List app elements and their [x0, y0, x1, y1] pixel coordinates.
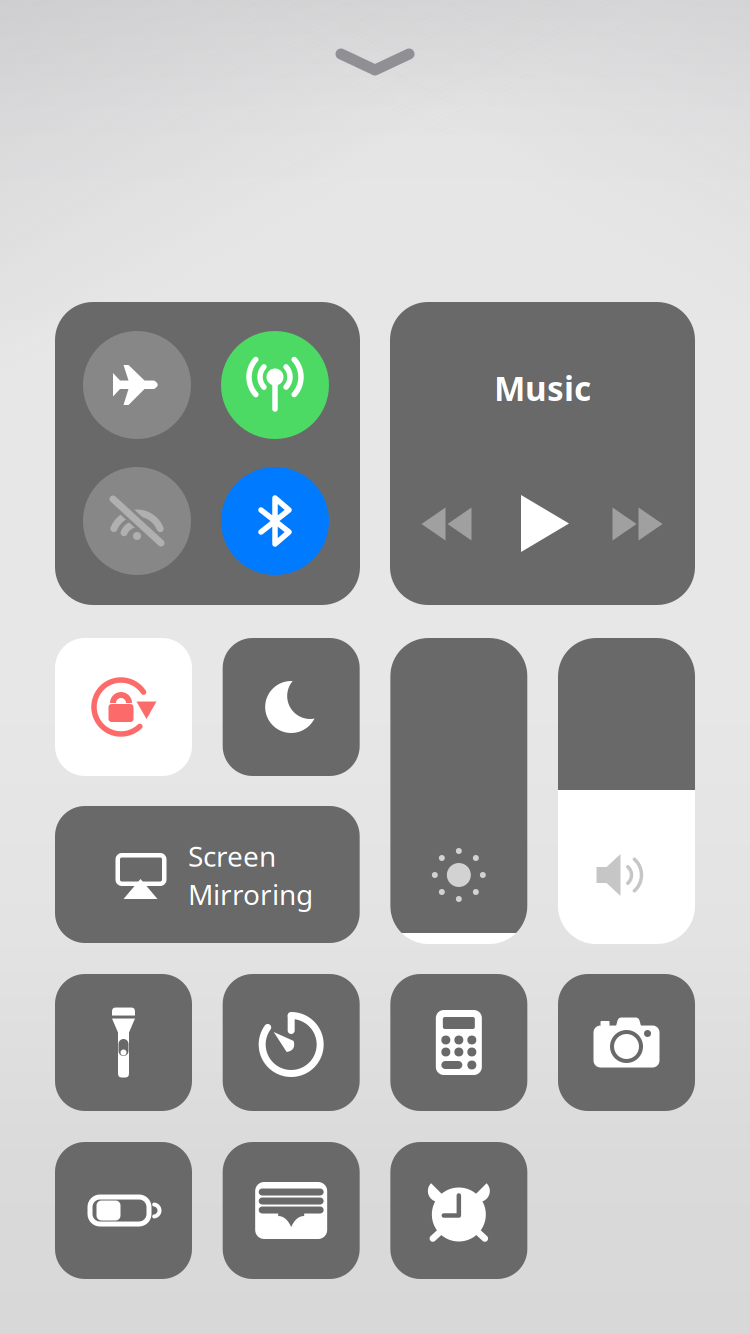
button[interactable]: Next Track — [611, 506, 664, 541]
button[interactable]: Play — [519, 494, 571, 553]
button[interactable]: Screen — [55, 806, 360, 943]
button[interactable]: Wallet — [223, 1142, 360, 1279]
button[interactable]: Rotation Lock — [55, 638, 192, 776]
button[interactable]: Bluetooth — [221, 467, 329, 575]
button[interactable]: Wi-Fi — [83, 467, 191, 575]
button[interactable]: Calculator — [390, 974, 527, 1111]
button[interactable]: Camera — [558, 974, 695, 1111]
button[interactable]: Brightness — [390, 638, 527, 944]
staticText: Screen — [188, 837, 276, 874]
button[interactable]: Do Not Disturb — [223, 638, 360, 776]
button[interactable]: Alarm — [390, 1142, 527, 1279]
button[interactable]: Flashlight — [55, 974, 192, 1111]
button[interactable]: Previous Track — [420, 506, 473, 541]
staticText: Mirroring — [188, 875, 313, 913]
button[interactable]: Timer — [223, 974, 360, 1111]
button[interactable]: Airplane Mode — [83, 331, 191, 439]
button[interactable]: Low Power Mode — [55, 1142, 192, 1279]
button[interactable]: Cellular Data — [221, 331, 329, 439]
staticText: Music — [494, 366, 591, 410]
button[interactable]: Volume — [558, 638, 695, 944]
